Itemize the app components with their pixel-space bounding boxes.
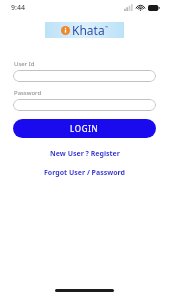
staticText: 9:44 (11, 3, 25, 13)
button[interactable]: User Id input (13, 70, 156, 82)
staticText: New User ? Register (50, 149, 120, 159)
button[interactable]: Password input (13, 99, 156, 111)
staticText: Password (14, 89, 42, 97)
staticText: Khata (72, 22, 105, 38)
staticText: User Id (14, 60, 35, 68)
button[interactable]: LOGIN (13, 119, 156, 138)
staticText: LOGIN (70, 123, 99, 134)
staticText: Forgot User / Password (44, 168, 125, 178)
button[interactable]: Forgot User / Password (0, 168, 169, 178)
button[interactable]: New User ? Register (0, 149, 169, 159)
staticText: ™ (105, 25, 109, 30)
